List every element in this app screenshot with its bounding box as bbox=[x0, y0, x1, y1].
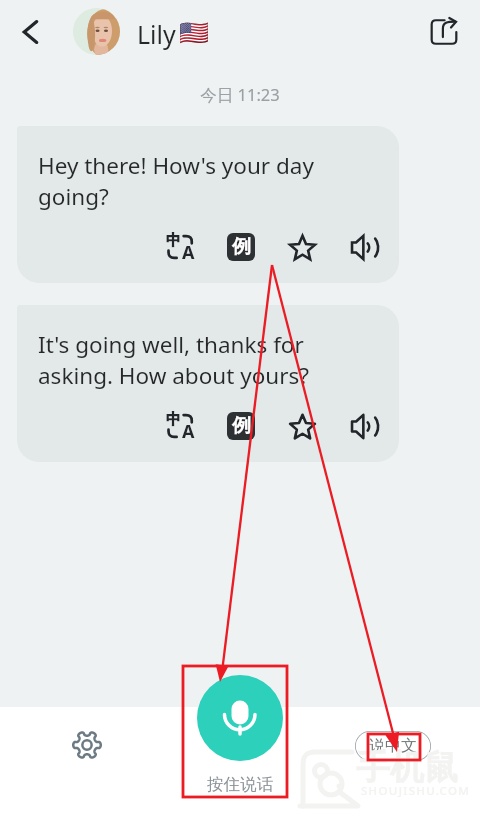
button[interactable]: Back bbox=[8, 9, 54, 55]
staticText: 今日 11:23 bbox=[200, 83, 280, 106]
button[interactable]: 说中文 bbox=[355, 731, 431, 761]
staticText: 手机鼠 bbox=[356, 746, 458, 789]
button[interactable]: Hold to speak bbox=[197, 675, 283, 761]
staticText: It's going well, thanks for asking. How … bbox=[38, 329, 378, 390]
staticText: 例 bbox=[232, 235, 251, 259]
staticText: A bbox=[182, 240, 195, 265]
button[interactable]: Favorite bbox=[285, 230, 319, 264]
button[interactable]: It's going well, thanks for asking. How … bbox=[17, 305, 399, 462]
button[interactable]: Favorite bbox=[285, 409, 319, 443]
button[interactable]: Translate bbox=[163, 409, 197, 443]
staticText: A bbox=[182, 419, 195, 444]
button[interactable]: Examples bbox=[224, 230, 258, 264]
staticText: 说中文 bbox=[369, 736, 417, 756]
button[interactable]: Share bbox=[421, 9, 467, 55]
button[interactable]: Hey there! How's your day going? bbox=[17, 126, 399, 283]
button[interactable]: Play audio bbox=[347, 409, 381, 443]
staticText: Hey there! How's your day going? bbox=[38, 150, 378, 211]
staticText: Lily bbox=[137, 17, 176, 51]
staticText: 中 bbox=[166, 231, 181, 250]
button[interactable]: Translate bbox=[163, 230, 197, 264]
staticText: 中 bbox=[166, 410, 181, 429]
button[interactable]: Settings bbox=[65, 723, 109, 767]
staticText: 例 bbox=[232, 414, 251, 438]
staticText: SHOUJISHU.COM bbox=[361, 783, 471, 799]
button[interactable]: Examples bbox=[224, 409, 258, 443]
staticText: 按住说话 bbox=[207, 774, 273, 795]
staticText: 🇺🇸 bbox=[179, 19, 209, 47]
button[interactable]: Play audio bbox=[347, 230, 381, 264]
